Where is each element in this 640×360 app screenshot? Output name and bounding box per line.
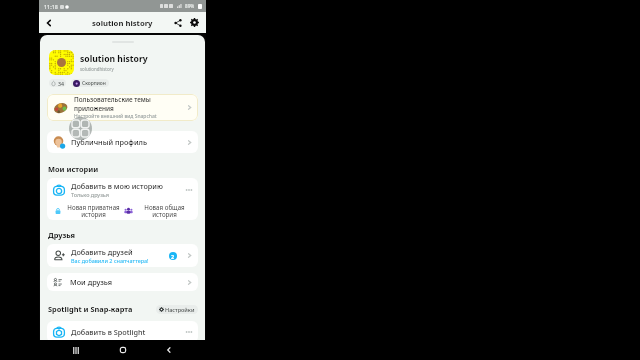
staticText: 89%	[185, 3, 195, 9]
button[interactable]: Добавить в Spotlight	[47, 321, 198, 343]
staticText: Настройте внешний вид Snapchat	[74, 113, 157, 120]
staticText: Настройки	[165, 306, 195, 313]
staticText: solutiondhistory	[80, 66, 114, 72]
staticText: Мои друзья	[70, 277, 186, 287]
staticText: 11:18	[44, 3, 58, 10]
staticText: Новая приватная история	[67, 203, 120, 219]
button[interactable]: Recent apps	[67, 341, 85, 359]
staticText: solution history	[80, 53, 148, 65]
button[interactable]: App panel handle	[69, 117, 92, 140]
button[interactable]: Новая приватная история	[47, 201, 122, 220]
staticText: Добавить в мою историю	[71, 181, 163, 191]
staticText: Мои истории	[48, 164, 99, 174]
button[interactable]: Share	[170, 15, 185, 30]
button[interactable]: Скорпион	[71, 79, 109, 87]
staticText: Публичный профиль	[71, 137, 186, 147]
staticText: Добавить в Spotlight	[71, 327, 185, 337]
staticText: Вас добавили 2 снапчаттера!	[71, 257, 149, 264]
button[interactable]: Back	[41, 15, 57, 31]
button[interactable]: Snap score	[49, 79, 66, 87]
staticText: Друзья	[48, 230, 75, 240]
staticText: Только друзья	[71, 191, 109, 198]
button[interactable]: Пользовательские темы приложения	[47, 94, 198, 121]
staticText: Добавить друзей	[71, 247, 133, 257]
staticText: Пользовательские темы приложения	[74, 95, 151, 113]
staticText: Скорпион	[82, 80, 106, 87]
button[interactable]: Profile avatar	[49, 50, 74, 75]
staticText: 2	[171, 253, 175, 260]
button[interactable]: Home	[114, 341, 132, 359]
staticText: 34	[58, 80, 64, 87]
button[interactable]: Добавить друзей	[47, 244, 198, 267]
button[interactable]: Публичный профиль	[47, 131, 198, 153]
button[interactable]: Мои друзья	[47, 273, 198, 291]
button[interactable]: Настройки	[156, 305, 198, 314]
staticText: Новая общая история	[138, 203, 191, 219]
staticText: solution history	[92, 18, 153, 28]
button[interactable]: Settings	[187, 15, 202, 30]
button[interactable]: Добавить в мою историю	[47, 178, 198, 201]
staticText: Spotlight и Snap-карта	[48, 304, 156, 314]
button[interactable]: Back	[160, 341, 178, 359]
button[interactable]: Новая общая история	[122, 201, 198, 220]
